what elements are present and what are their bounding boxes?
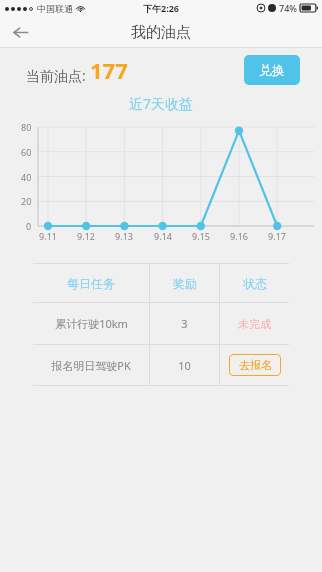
staticText: 60 [21,146,32,158]
staticText: 近7天收益 [129,94,194,113]
staticText: 兑换 [259,62,285,78]
staticText: 3 [181,316,188,331]
staticText: 报名明日驾驶PK [51,358,131,373]
staticText: 9.15 [192,230,210,242]
staticText: 累计行驶10km [55,316,128,331]
staticText: 中国联通 [37,3,73,14]
staticText: 9.16 [230,230,248,242]
button[interactable]: Back [0,16,40,48]
staticText: 未完成 [238,317,271,331]
staticText: 当前油点: [26,66,86,85]
staticText: 我的油点 [131,23,191,42]
staticText: 9.12 [77,230,95,242]
staticText: 40 [21,171,32,183]
staticText: 9.11 [39,230,57,242]
staticText: 10 [178,358,191,373]
staticText: 9.13 [115,230,133,242]
staticText: 奖励 [173,276,197,291]
staticText: 0 [26,220,32,232]
staticText: 177 [90,55,128,85]
staticText: 状态 [243,276,267,291]
staticText: 9.17 [268,230,286,242]
staticText: 9.14 [154,230,172,242]
staticText: 74% [279,2,297,14]
staticText: 下午2:26 [143,2,179,14]
staticText: 去报名 [239,358,272,372]
staticText: 每日任务 [67,276,115,291]
button[interactable]: 兑换 [244,55,300,85]
staticText: 80 [21,121,32,133]
button[interactable]: 去报名 [229,354,281,376]
staticText: 20 [21,195,32,207]
